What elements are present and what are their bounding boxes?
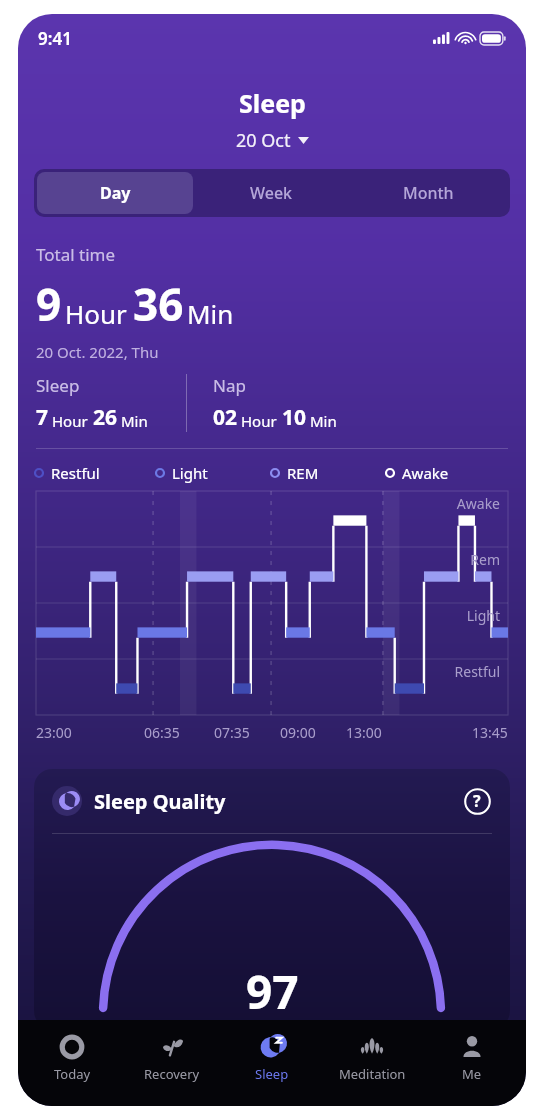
staticText: Awake [36,494,500,513]
staticText: 26 [93,403,118,432]
staticText: REM [287,463,319,483]
button[interactable]: Meditation [326,1032,418,1085]
staticText: Restful [51,463,100,483]
staticText: 9:41 [38,27,72,50]
button[interactable]: Help about sleep quality [462,786,492,816]
staticText: Sleep [36,374,80,397]
staticText: Light [36,606,500,625]
staticText: Month [403,182,454,204]
button[interactable]: Week [193,172,350,214]
staticText: 23:00 [36,723,72,742]
staticText: Sleep Quality [94,788,226,815]
button[interactable]: Day [37,172,193,214]
staticText: 13:00 [346,723,382,742]
staticText: 36 [133,274,184,334]
staticText: Min [121,411,148,431]
staticText: Meditation [339,1065,406,1083]
button[interactable]: Sleep Quality [34,769,510,1029]
staticText: 09:00 [280,723,316,742]
staticText: 7 [36,403,49,432]
staticText: Recovery [144,1065,200,1083]
button[interactable]: Awake [385,463,506,483]
staticText: Light [172,463,208,483]
staticText: Min [187,296,234,331]
button[interactable]: Recovery [126,1032,218,1085]
staticText: Sleep [239,86,306,120]
staticText: Hour [241,411,277,431]
staticText: Awake [402,463,449,483]
staticText: Hour [52,411,88,431]
staticText: Me [462,1065,482,1083]
staticText: Week [250,182,293,204]
staticText: Sleep [255,1065,289,1083]
staticText: 02 [213,403,238,432]
button[interactable]: Today [26,1032,118,1085]
staticText: 9 [36,274,62,334]
staticText: Total time [36,243,116,266]
button[interactable]: Restful [34,463,155,483]
staticText: Nap [213,374,246,397]
button[interactable]: Sleep [226,1032,318,1085]
staticText: Day [100,182,131,204]
staticText: 20 Oct [236,128,291,153]
staticText: 20 Oct. 2022, Thu [36,342,159,362]
button[interactable]: Light [155,463,270,483]
button[interactable]: REM [270,463,385,483]
button[interactable]: Me [426,1032,518,1085]
staticText: 07:35 [214,723,250,742]
staticText: 97 [246,960,299,1023]
staticText: 06:35 [144,723,180,742]
staticText: Rem [36,550,500,569]
staticText: Hour [65,296,127,331]
button[interactable]: Month [350,172,507,214]
staticText: Restful [36,662,500,681]
staticText: 13:45 [472,723,508,742]
staticText: Today [54,1065,91,1083]
staticText: Min [310,411,337,431]
staticText: 10 [282,403,307,432]
staticText: ? [473,790,481,812]
button[interactable]: 20 Oct [230,126,315,155]
